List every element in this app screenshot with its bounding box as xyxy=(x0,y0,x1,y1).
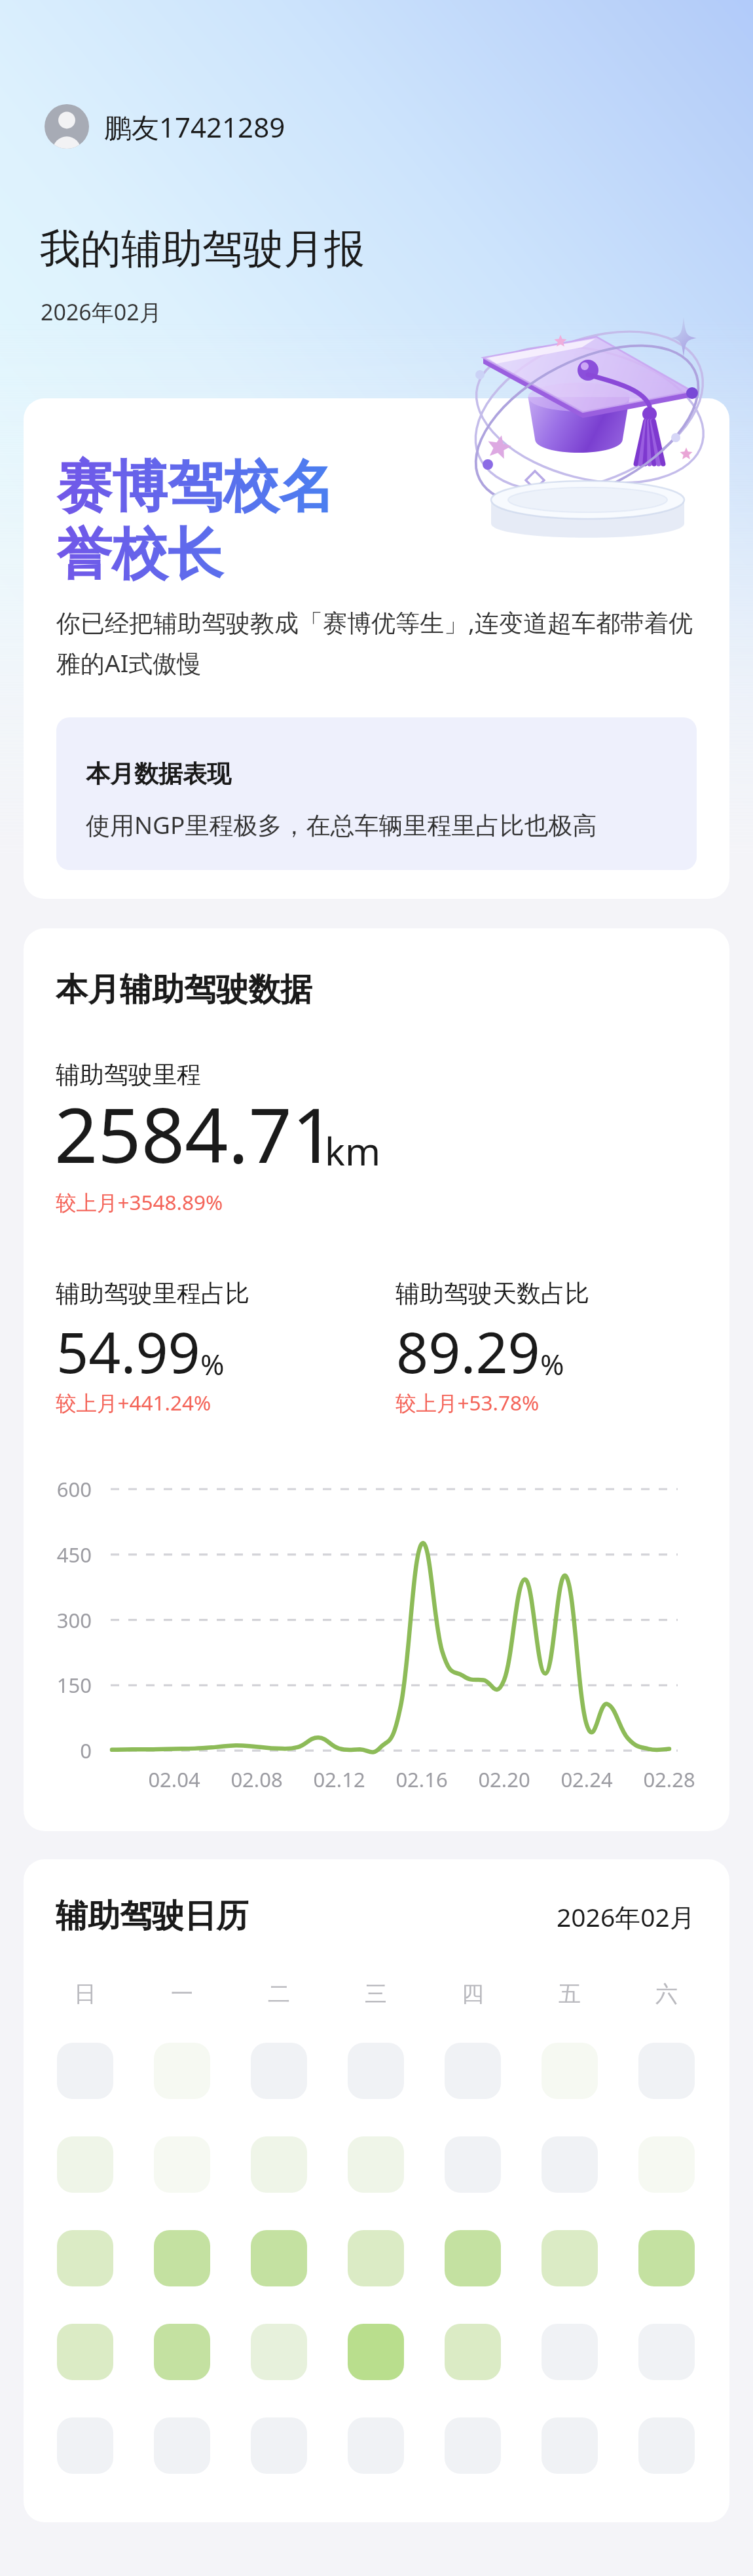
button[interactable] xyxy=(348,2417,404,2474)
staticText: 三 xyxy=(365,1980,387,2008)
button[interactable] xyxy=(251,2043,307,2099)
staticText: 2026年02月 xyxy=(557,1899,695,1934)
button[interactable] xyxy=(638,2043,695,2099)
staticText: 五 xyxy=(559,1980,581,2008)
staticText: 本月数据表现 xyxy=(86,759,231,789)
staticText: 0 xyxy=(80,1737,92,1764)
button[interactable] xyxy=(445,2230,501,2286)
staticText: % xyxy=(200,1344,225,1384)
staticText: 六 xyxy=(655,1980,678,2008)
button[interactable] xyxy=(638,2417,695,2474)
staticText: 较上月+3548.89% xyxy=(56,1188,223,1216)
button[interactable] xyxy=(542,2230,598,2286)
button[interactable] xyxy=(348,2043,404,2099)
button[interactable] xyxy=(542,2417,598,2474)
staticText: 赛博驾校名 誉校长 xyxy=(56,452,335,590)
staticText: 二 xyxy=(268,1980,290,2008)
button[interactable] xyxy=(348,2230,404,2286)
button[interactable] xyxy=(251,2324,307,2380)
button[interactable] xyxy=(638,2230,695,2286)
staticText: 2584.71 xyxy=(54,1082,336,1185)
staticText: 一 xyxy=(171,1980,193,2008)
staticText: 四 xyxy=(462,1980,484,2008)
button[interactable] xyxy=(154,2230,210,2286)
staticText: 600 xyxy=(56,1475,92,1503)
staticText: 你已经把辅助驾驶教成「赛博优等生」,连变道超车都带着优雅的AI式傲慢 xyxy=(56,605,702,679)
staticText: 54.99 xyxy=(56,1313,200,1390)
button[interactable] xyxy=(445,2417,501,2474)
button[interactable] xyxy=(57,2136,113,2193)
button[interactable] xyxy=(154,2417,210,2474)
button[interactable] xyxy=(57,2324,113,2380)
button[interactable] xyxy=(445,2324,501,2380)
button[interactable] xyxy=(154,2136,210,2193)
staticText: 辅助驾驶里程 xyxy=(56,1059,201,1090)
button[interactable]: 鹏友17421289 xyxy=(45,104,285,149)
button[interactable] xyxy=(348,2324,404,2380)
staticText: 2026年02月 xyxy=(41,297,162,327)
staticText: 辅助驾驶里程占比 xyxy=(56,1278,249,1309)
staticText: 02.28 xyxy=(643,1766,695,1793)
staticText: 使用NGP里程极多，在总车辆里程里占比也极高 xyxy=(86,808,597,841)
staticText: 89.29 xyxy=(396,1313,540,1390)
staticText: 较上月+53.78% xyxy=(395,1388,540,1416)
staticText: 02.24 xyxy=(560,1766,613,1793)
button[interactable] xyxy=(57,2417,113,2474)
button[interactable] xyxy=(348,2136,404,2193)
button[interactable] xyxy=(57,2043,113,2099)
staticText: 本月辅助驾驶数据 xyxy=(56,970,312,1010)
staticText: % xyxy=(540,1344,564,1384)
staticText: 日 xyxy=(74,1980,96,2008)
button[interactable] xyxy=(251,2136,307,2193)
button[interactable] xyxy=(638,2324,695,2380)
button[interactable] xyxy=(638,2136,695,2193)
button[interactable] xyxy=(251,2417,307,2474)
staticText: 较上月+441.24% xyxy=(56,1388,211,1416)
staticText: 辅助驾驶天数占比 xyxy=(395,1278,589,1309)
button[interactable] xyxy=(542,2324,598,2380)
staticText: 我的辅助驾驶月报 xyxy=(40,223,365,275)
button[interactable] xyxy=(57,2230,113,2286)
staticText: 02.12 xyxy=(313,1766,365,1793)
staticText: km xyxy=(325,1125,381,1177)
button[interactable] xyxy=(542,2136,598,2193)
button[interactable] xyxy=(445,2043,501,2099)
staticText: 02.16 xyxy=(395,1766,448,1793)
button[interactable] xyxy=(154,2324,210,2380)
staticText: 鹏友17421289 xyxy=(104,108,285,145)
button[interactable] xyxy=(251,2230,307,2286)
staticText: 150 xyxy=(56,1671,92,1699)
button[interactable] xyxy=(542,2043,598,2099)
button[interactable] xyxy=(445,2136,501,2193)
staticText: 02.04 xyxy=(148,1766,200,1793)
staticText: 02.20 xyxy=(478,1766,530,1793)
staticText: 300 xyxy=(56,1606,92,1634)
staticText: 02.08 xyxy=(230,1766,283,1793)
staticText: 辅助驾驶日历 xyxy=(56,1896,248,1937)
staticText: 450 xyxy=(56,1541,92,1568)
